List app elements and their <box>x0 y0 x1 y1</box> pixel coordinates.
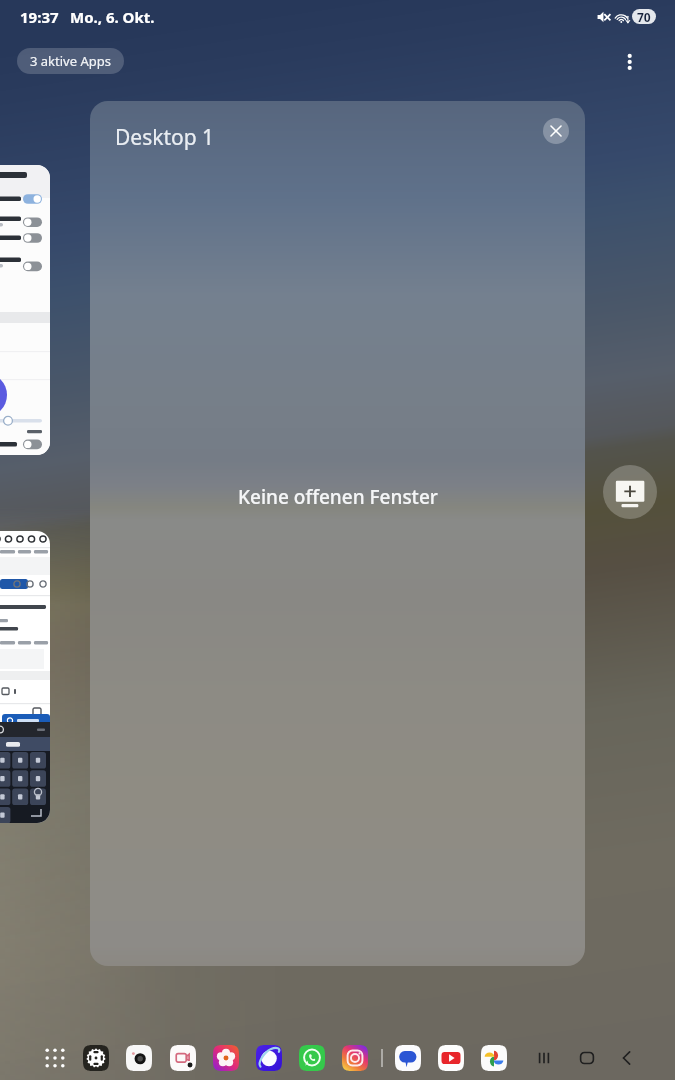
button[interactable]: Schließen <box>543 118 569 144</box>
button[interactable]: Letzte Apps <box>527 1041 561 1075</box>
staticText: 3 aktive Apps <box>30 52 111 70</box>
button[interactable]: YouTube <box>434 1041 468 1075</box>
staticText: 70 <box>637 9 651 24</box>
staticText: Keine offenen Fenster <box>238 484 438 510</box>
button[interactable]: 3 aktive Apps <box>17 48 124 74</box>
button[interactable]: Startseite <box>570 1041 604 1075</box>
button[interactable]: Zurück <box>610 1041 644 1075</box>
button[interactable]: Kamera <box>122 1041 156 1075</box>
button[interactable]: Nachrichten <box>391 1041 425 1075</box>
button[interactable]: Video <box>166 1041 200 1075</box>
button[interactable]: Einstellungen <box>79 1041 113 1075</box>
staticText: 19:37 <box>20 7 59 27</box>
button[interactable] <box>0 165 50 455</box>
button[interactable]: Galerie <box>209 1041 243 1075</box>
button[interactable]: Mehr Optionen <box>612 43 648 79</box>
button[interactable]: Neuen Desktop hinzufügen <box>603 465 657 519</box>
button[interactable]: Apps <box>38 1041 72 1075</box>
staticText: Desktop 1 <box>115 123 215 152</box>
button[interactable]: Instagram <box>338 1041 372 1075</box>
button[interactable]: Browser <box>252 1041 286 1075</box>
staticText: Mo., 6. Okt. <box>70 7 155 27</box>
button[interactable]: WhatsApp <box>295 1041 329 1075</box>
button[interactable]: Fotos <box>477 1041 511 1075</box>
button[interactable] <box>0 531 50 823</box>
button[interactable]: Desktop 1 <box>90 101 585 966</box>
